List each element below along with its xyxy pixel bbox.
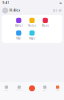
button[interactable]: Search [13, 86, 26, 91]
staticText: Home [4, 89, 8, 91]
staticText: See all [53, 9, 62, 12]
staticText: Notes [28, 24, 36, 27]
button[interactable]: You [51, 86, 64, 91]
button[interactable]: Wallet [12, 17, 25, 28]
staticText: Mail [16, 37, 21, 40]
staticText: Search [16, 89, 22, 91]
staticText: ◼◼ [59, 2, 61, 4]
button[interactable]: Create [26, 85, 38, 91]
button[interactable]: Home [0, 86, 13, 91]
button[interactable]: See all [53, 9, 62, 12]
staticText: Maps [29, 37, 35, 40]
staticText: 9:41 [3, 1, 10, 5]
button[interactable]: Profile [2, 7, 8, 13]
button[interactable]: Mail [12, 30, 25, 41]
button[interactable]: Alerts [38, 86, 51, 91]
staticText: Music [42, 24, 49, 27]
staticText: Alerts [43, 89, 47, 91]
staticText: Wallet [15, 24, 23, 27]
button[interactable]: Notes [25, 17, 39, 28]
button[interactable]: Music [39, 17, 52, 28]
button[interactable]: Maps [25, 30, 39, 41]
staticText: Hi Alex [9, 9, 19, 12]
staticText: You [56, 89, 59, 91]
